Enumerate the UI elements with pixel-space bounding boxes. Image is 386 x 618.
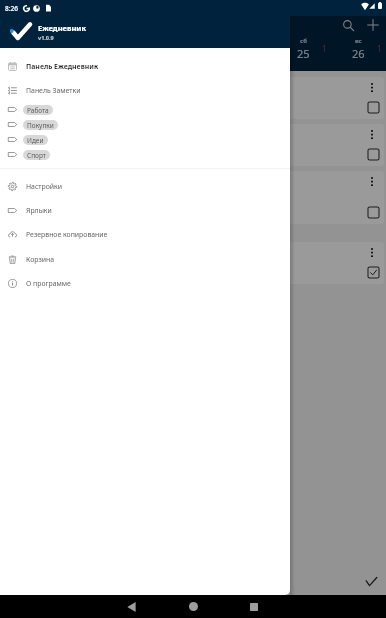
staticText: 1: [47, 43, 52, 54]
staticText: Корзина: [26, 255, 55, 264]
button[interactable]: Search: [332, 9, 364, 41]
staticText: 21: [77, 46, 90, 61]
button[interactable]: вс: [331, 36, 386, 71]
button[interactable]: Резервное копирование: [0, 223, 290, 245]
staticText: 24: [242, 46, 255, 61]
staticText: Спорт: [27, 151, 46, 160]
button[interactable]: ср: [111, 36, 166, 71]
staticText: 1: [102, 43, 107, 54]
staticText: 1: [212, 43, 217, 54]
button[interactable]: More options: [2, 242, 384, 284]
button[interactable]: вт: [56, 36, 111, 71]
button[interactable]: More options: [365, 245, 379, 259]
staticText: Идеи: [27, 136, 44, 145]
button[interactable]: More options: [365, 127, 379, 141]
button[interactable]: пн: [0, 36, 56, 71]
button[interactable]: Back: [117, 595, 145, 618]
button[interactable]: Панель Ежедневник: [0, 55, 290, 77]
button[interactable]: Ярлыки: [0, 199, 290, 221]
button[interactable]: чт: [166, 36, 221, 71]
button[interactable]: пт: [221, 36, 276, 71]
button[interactable]: Корзина: [0, 248, 290, 270]
button[interactable]: More options: [365, 174, 379, 188]
button[interactable]: О программе: [0, 272, 290, 294]
staticText: Работа: [27, 106, 49, 115]
staticText: 8:26: [5, 4, 18, 13]
staticText: вс: [355, 37, 362, 45]
button[interactable]: Панель Заметки: [0, 79, 290, 101]
button[interactable]: Mark task done: [367, 148, 379, 160]
staticText: 25: [297, 46, 310, 61]
staticText: О программе: [26, 279, 71, 288]
staticText: 26: [352, 46, 365, 61]
button[interactable]: More options: [2, 77, 384, 119]
staticText: сб: [300, 37, 307, 45]
button[interactable]: More options: [2, 171, 384, 224]
staticText: 1: [157, 43, 162, 54]
button[interactable]: Add task: [353, 563, 386, 599]
button[interactable]: More options: [365, 80, 379, 94]
button[interactable]: Работа: [0, 102, 290, 117]
button[interactable]: Mark task done: [367, 101, 379, 113]
button[interactable]: Mark task done: [367, 206, 379, 218]
staticText: Резервное копирование: [26, 230, 108, 239]
button[interactable]: Home: [179, 595, 207, 618]
button[interactable]: Спорт: [0, 147, 290, 162]
staticText: Ярлыки: [26, 206, 52, 215]
staticText: 1: [267, 43, 272, 54]
staticText: Панель Ежедневник: [26, 62, 99, 71]
button[interactable]: Покупки: [0, 117, 290, 132]
button[interactable]: Настройки: [0, 175, 290, 197]
button[interactable]: Идеи: [0, 132, 290, 147]
button[interactable]: Mark task done: [367, 266, 379, 278]
staticText: 1: [377, 43, 382, 54]
staticText: Покупки: [27, 121, 54, 130]
button[interactable]: Recent apps: [240, 595, 268, 618]
staticText: Панель Заметки: [26, 86, 81, 95]
button[interactable]: Add: [357, 9, 386, 41]
staticText: 1: [322, 43, 327, 54]
button[interactable]: сб: [276, 36, 331, 71]
staticText: 23: [187, 46, 200, 61]
staticText: v1.0.9: [38, 34, 54, 41]
staticText: Ежедневник: [38, 23, 86, 33]
staticText: Настройки: [26, 182, 63, 191]
button[interactable]: More options: [2, 124, 384, 166]
staticText: 22: [132, 46, 145, 61]
staticText: 20: [22, 46, 35, 61]
